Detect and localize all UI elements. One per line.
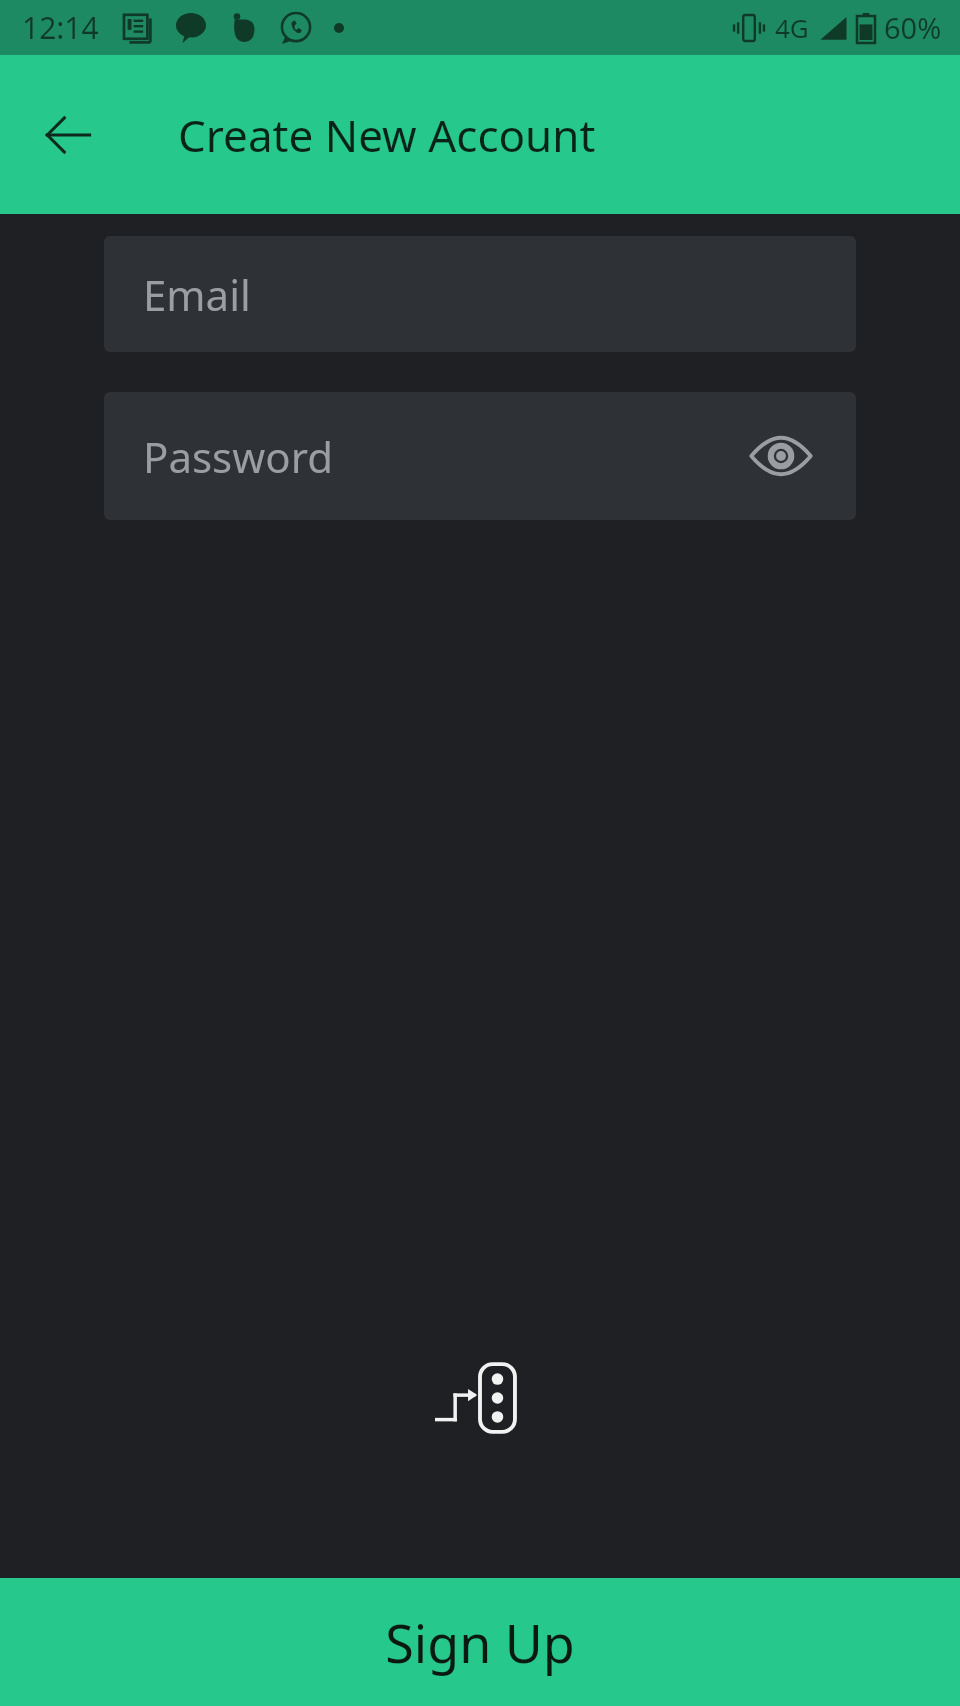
staticText: 4G (775, 10, 809, 45)
button[interactable]: Traffic light navigation (434, 1362, 526, 1434)
button[interactable]: Back (24, 91, 112, 179)
staticText: Email (143, 266, 817, 323)
button[interactable]: Sign Up (0, 1578, 960, 1706)
staticText: Create New Account (178, 105, 596, 165)
staticText: 12:14 (22, 7, 99, 48)
button[interactable]: Email (104, 236, 856, 352)
staticText: Password (143, 428, 745, 485)
staticText: Sign Up (385, 1607, 575, 1678)
button[interactable]: Password (104, 392, 856, 520)
button[interactable]: Show password (745, 420, 817, 492)
staticText: 60% (884, 8, 942, 47)
